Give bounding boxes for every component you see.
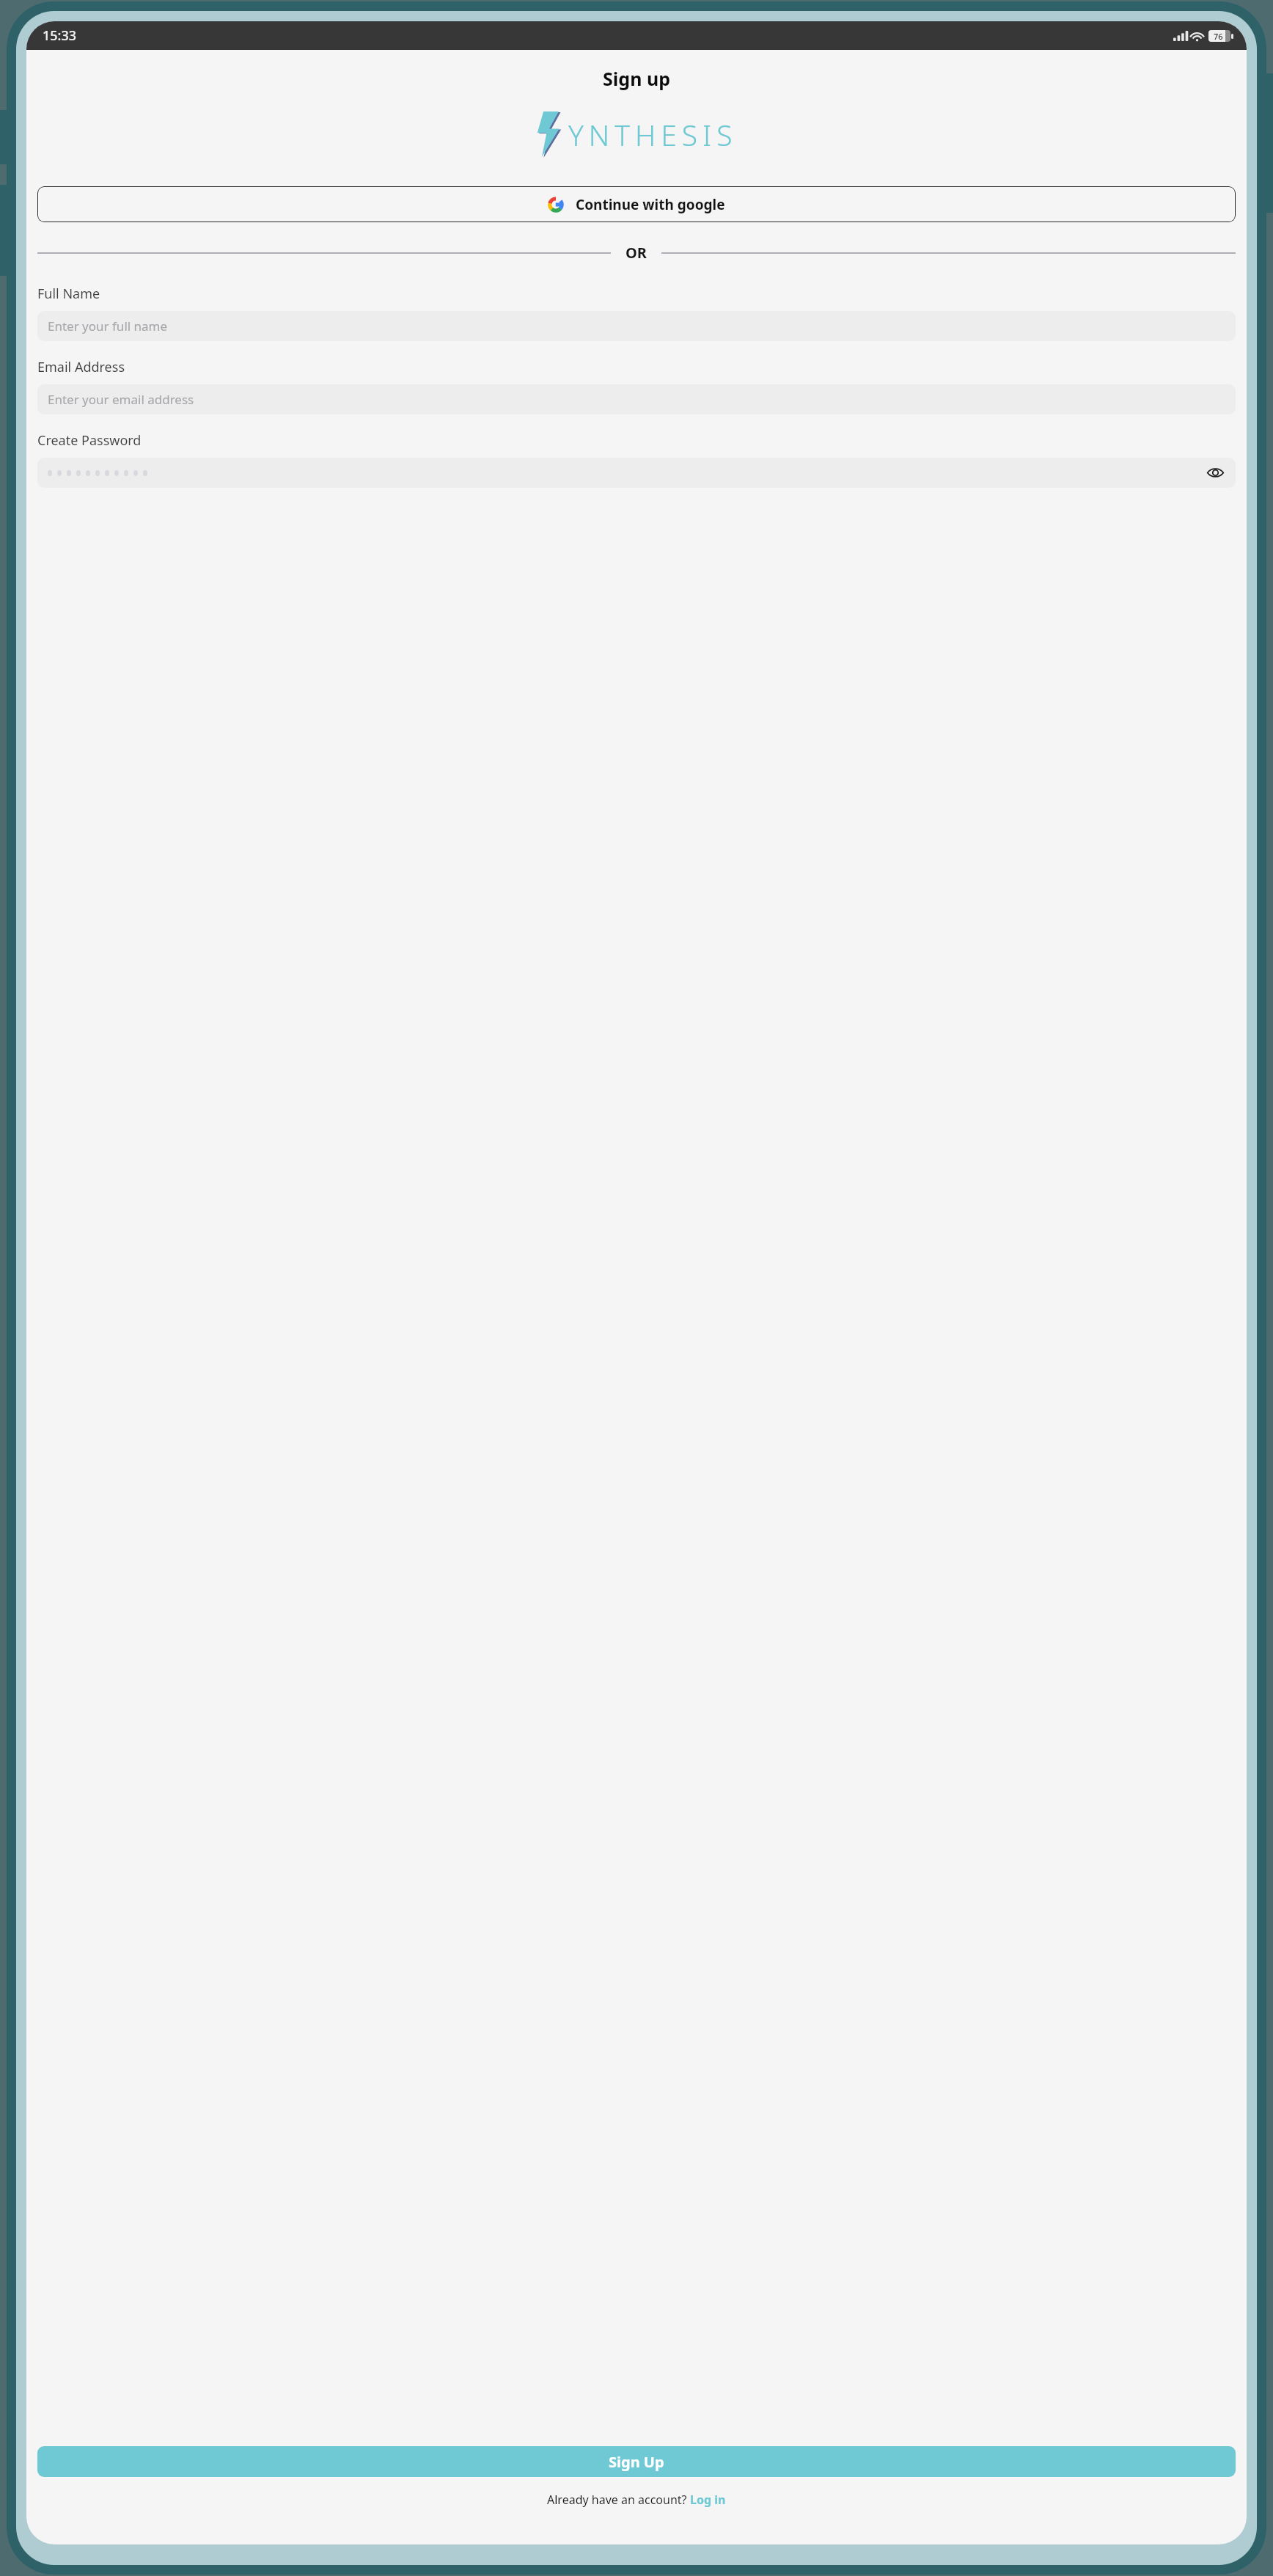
staticText: OR (626, 243, 647, 263)
button[interactable]: Enter your email address (37, 384, 1236, 414)
staticText: Create Password (37, 431, 142, 450)
staticText: Enter your full name (48, 318, 168, 334)
staticText: Continue with google (576, 195, 725, 214)
staticText: Sign Up (609, 2452, 664, 2472)
button[interactable]: Sign Up (37, 2446, 1236, 2477)
staticText: Email Address (37, 358, 125, 376)
button[interactable]: Log in (690, 2492, 726, 2508)
staticText: YNTHESIS (568, 115, 738, 154)
button[interactable]: Show password (1206, 463, 1225, 483)
staticText: Log in (690, 2492, 726, 2508)
staticText: Full Name (37, 285, 100, 303)
button[interactable]: Enter your full name (37, 311, 1236, 341)
staticText: 15:33 (43, 26, 77, 45)
button[interactable]: Show password (37, 458, 1236, 488)
staticText: Already have an account? (547, 2492, 690, 2508)
button[interactable]: Continue with google (37, 186, 1236, 222)
staticText: Sign up (26, 66, 1247, 91)
staticText: 76 (1214, 31, 1223, 42)
staticText: Enter your email address (48, 391, 194, 408)
